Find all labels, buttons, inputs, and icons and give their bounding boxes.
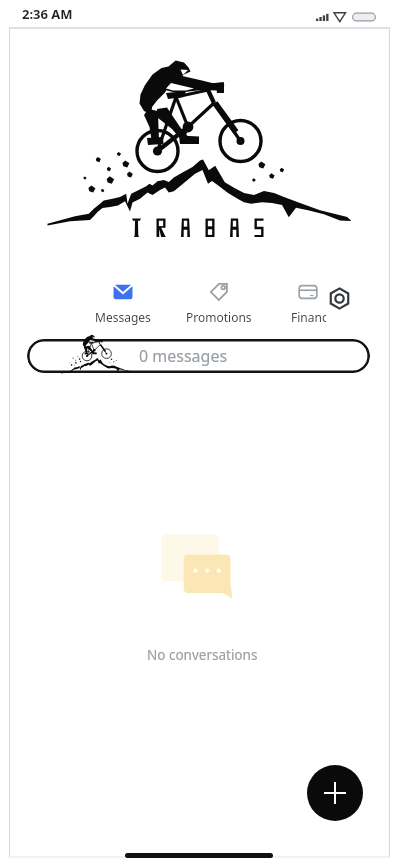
staticText: Messages	[95, 309, 151, 325]
staticText: Finance	[291, 309, 326, 325]
button[interactable]: Settings	[321, 280, 357, 316]
staticText: 2:36 AM	[22, 5, 73, 23]
staticText: No conversations	[147, 646, 258, 664]
staticText: 0 messages	[139, 345, 228, 367]
staticText: Promotions	[186, 309, 252, 325]
button[interactable]: Compose new message	[307, 765, 363, 821]
button[interactable]: Messages	[77, 277, 169, 325]
button[interactable]: 0 messages	[27, 339, 370, 373]
button[interactable]: Promotions	[173, 277, 265, 325]
button[interactable]: Finance	[262, 277, 354, 325]
